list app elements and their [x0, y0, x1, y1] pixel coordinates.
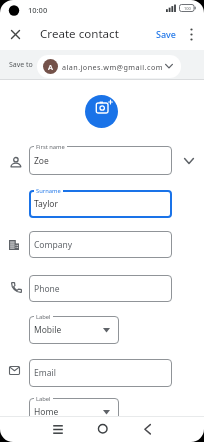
button[interactable] — [88, 416, 117, 442]
staticText: Surname — [36, 187, 61, 195]
staticText: Create contact — [40, 26, 119, 42]
button[interactable]: Label — [29, 316, 119, 344]
staticText: Taylor — [34, 198, 58, 210]
staticText: Save — [156, 28, 177, 40]
staticText: Label — [36, 395, 51, 403]
button[interactable] — [133, 416, 162, 442]
button[interactable]: Email — [29, 359, 172, 387]
button[interactable] — [180, 152, 197, 169]
button[interactable]: Save — [150, 23, 182, 45]
staticText: Email — [34, 367, 56, 379]
staticText: alan.jones.wm@gmail.com — [62, 62, 163, 72]
staticText: Home — [34, 406, 59, 418]
staticText: 100 — [184, 6, 191, 11]
button[interactable] — [7, 26, 24, 43]
staticText: Save to — [9, 60, 33, 70]
staticText: Zoe — [34, 155, 49, 167]
button[interactable]: A — [37, 55, 181, 78]
staticText: Company — [34, 239, 73, 251]
button[interactable]: First name — [29, 146, 172, 175]
staticText: First name — [36, 143, 65, 151]
staticText: Mobile — [34, 324, 62, 336]
staticText: 10:00 — [28, 5, 48, 15]
button[interactable]: Surname — [29, 190, 172, 218]
button[interactable]: Phone — [29, 275, 172, 302]
staticText: Label — [36, 313, 51, 321]
staticText: A — [48, 62, 53, 72]
button[interactable] — [85, 95, 118, 128]
button[interactable]: Company — [29, 231, 172, 258]
staticText: Phone — [34, 283, 60, 295]
button[interactable] — [43, 416, 72, 442]
button[interactable]: Label — [29, 398, 119, 426]
button[interactable] — [184, 25, 199, 43]
